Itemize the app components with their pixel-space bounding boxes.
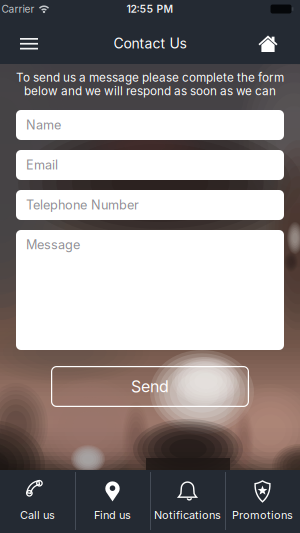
button[interactable]: Find us (75, 471, 149, 529)
staticText: 12:55 PM (126, 3, 173, 15)
staticText: Contact Us (113, 35, 186, 52)
button[interactable]: Telephone Number (16, 190, 284, 220)
staticText: Name (26, 117, 61, 133)
staticText: Find us (94, 508, 131, 522)
staticText: Email (26, 157, 58, 173)
button[interactable]: Message (16, 230, 284, 350)
staticText: Promotions (232, 508, 293, 522)
staticText: Notifications (154, 508, 221, 522)
staticText: Message (26, 237, 80, 252)
staticText: Send (131, 377, 169, 396)
button[interactable]: Email (16, 150, 284, 180)
button[interactable]: Send (51, 366, 249, 407)
staticText: Carrier (1, 3, 34, 15)
button[interactable]: Name (16, 110, 284, 140)
staticText: below and we will respond as soon as we … (24, 84, 276, 98)
button[interactable]: Promotions (225, 471, 299, 529)
staticText: To send us a message please complete the… (16, 70, 284, 85)
staticText: Call us (20, 508, 55, 522)
button[interactable]: Notifications (150, 471, 224, 529)
button[interactable] (258, 35, 277, 52)
button[interactable] (20, 38, 38, 50)
button[interactable]: Call us (0, 471, 74, 529)
staticText: Telephone Number (26, 197, 139, 213)
